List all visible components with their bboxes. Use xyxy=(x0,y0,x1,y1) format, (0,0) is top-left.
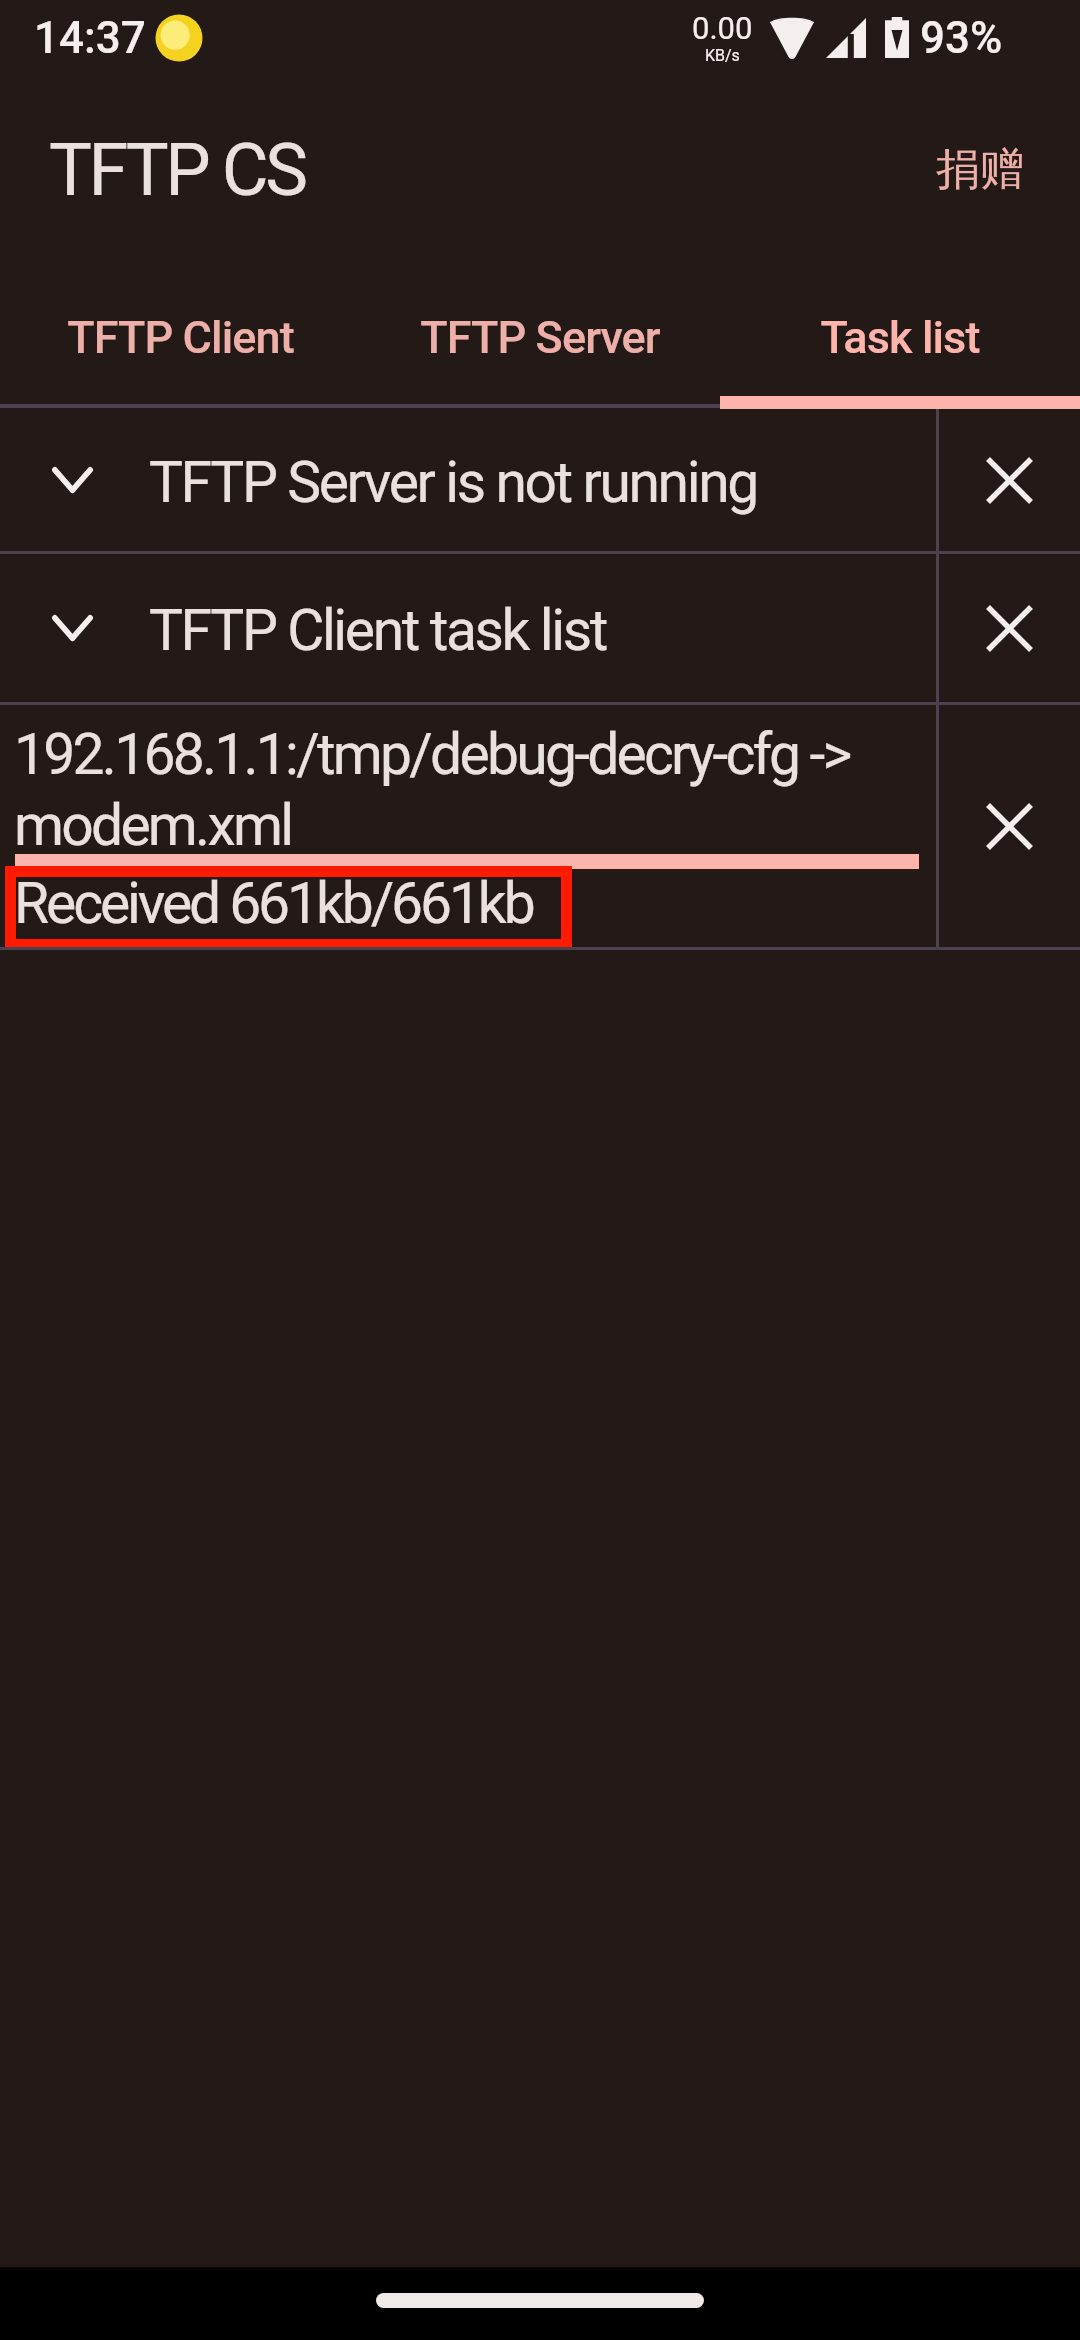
button[interactable]: Delete xyxy=(939,409,1080,551)
staticText: 捐赠 xyxy=(936,142,1024,197)
staticText: 192.168.1.1:/tmp/debug-decry-cfg -> mode… xyxy=(14,721,916,859)
button[interactable]: Cancel transfer xyxy=(939,705,1080,947)
staticText: TFTP Client task list xyxy=(149,597,606,664)
button[interactable]: TFTP Server xyxy=(360,255,720,409)
button[interactable]: 192.168.1.1:/tmp/debug-decry-cfg -> mode… xyxy=(0,705,936,947)
button[interactable]: TFTP Server is not running xyxy=(0,409,936,551)
staticText: Received 661kb/661kb xyxy=(14,870,533,937)
button[interactable]: Task list xyxy=(720,255,1080,409)
staticText: 93% xyxy=(920,12,1003,64)
button[interactable]: TFTP Client xyxy=(0,255,360,409)
staticText: 14:37 xyxy=(34,12,146,64)
staticText: TFTP Client xyxy=(67,311,294,364)
button[interactable]: Delete xyxy=(939,554,1080,702)
staticText: TFTP Server xyxy=(420,311,660,364)
staticText: TFTP Server is not running xyxy=(149,449,757,516)
button[interactable]: 捐赠 xyxy=(880,114,1080,217)
staticText: 0.00 xyxy=(692,10,753,46)
button[interactable]: TFTP Client task list xyxy=(0,554,936,702)
staticText: Task list xyxy=(820,311,980,364)
staticText: KB/s xyxy=(705,46,740,65)
staticText: TFTP CS xyxy=(49,128,305,212)
